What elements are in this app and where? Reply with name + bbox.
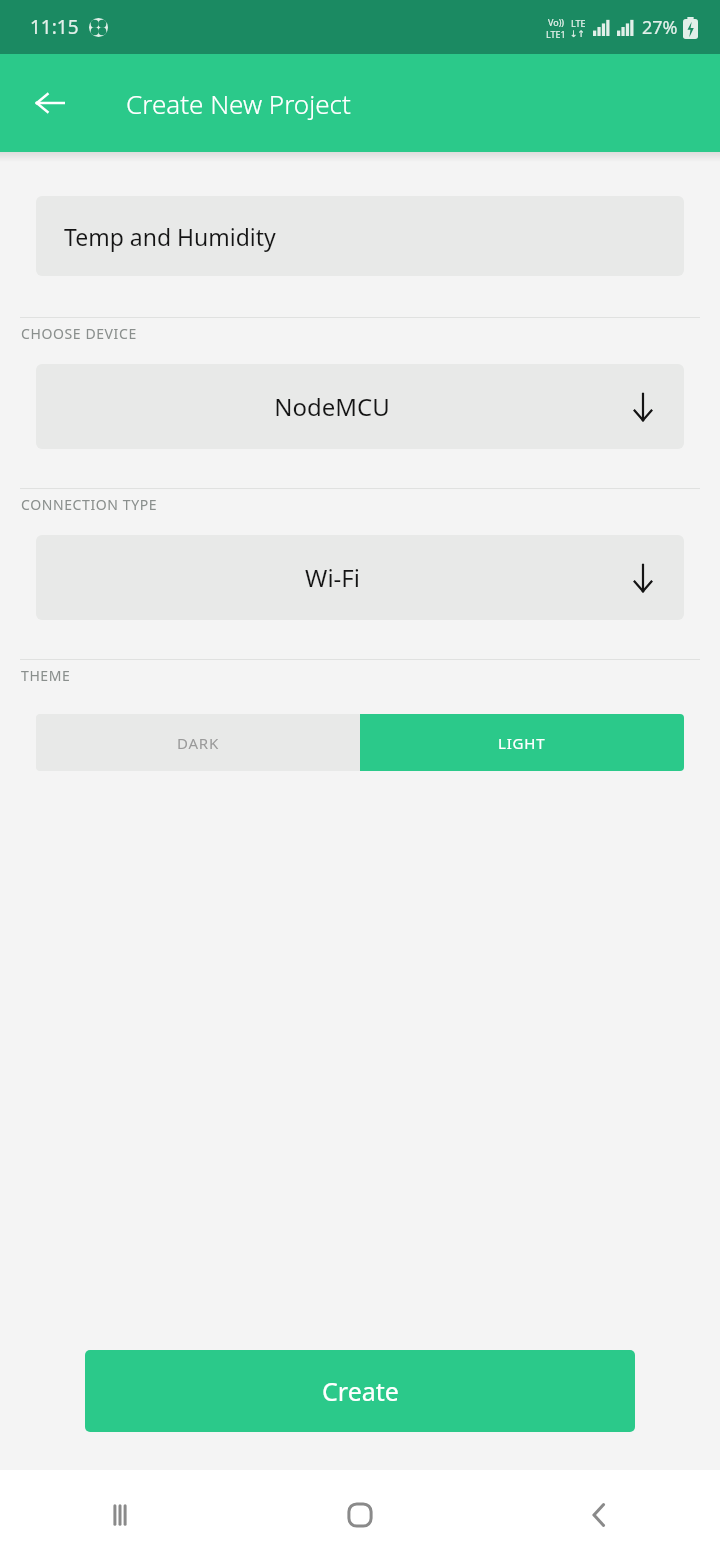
staticText: Vo)) <box>548 16 565 28</box>
staticText: LTE <box>571 17 586 29</box>
staticText: CONNECTION TYPE <box>21 495 158 514</box>
staticText: THEME <box>21 666 71 685</box>
staticText: 11:15 <box>30 14 79 40</box>
button[interactable]: Back <box>480 1470 720 1560</box>
staticText: CHOOSE DEVICE <box>21 324 137 343</box>
button[interactable]: Back <box>22 75 78 131</box>
staticText: Create <box>322 1374 399 1408</box>
button[interactable]: Wi-Fi <box>36 535 684 620</box>
staticText: DARK <box>177 733 220 753</box>
staticText: ↓↑ <box>570 29 586 39</box>
button[interactable]: LIGHT <box>360 714 684 771</box>
staticText: 27% <box>642 15 678 40</box>
other: Choose device <box>628 392 658 422</box>
staticText: NodeMCU <box>274 390 390 423</box>
button[interactable]: Home <box>240 1470 480 1560</box>
button[interactable]: Temp and Humidity <box>36 196 684 276</box>
other: Connection type <box>628 563 658 593</box>
staticText: LIGHT <box>498 733 546 753</box>
staticText: Wi-Fi <box>305 561 360 594</box>
staticText: Temp and Humidity <box>64 221 276 252</box>
button[interactable]: NodeMCU <box>36 364 684 449</box>
button[interactable]: DARK <box>36 714 360 771</box>
button[interactable]: Recent apps <box>0 1470 240 1560</box>
staticText: LTE1 <box>546 28 566 40</box>
button[interactable]: Create <box>85 1350 635 1432</box>
staticText: Create New Project <box>126 86 351 121</box>
